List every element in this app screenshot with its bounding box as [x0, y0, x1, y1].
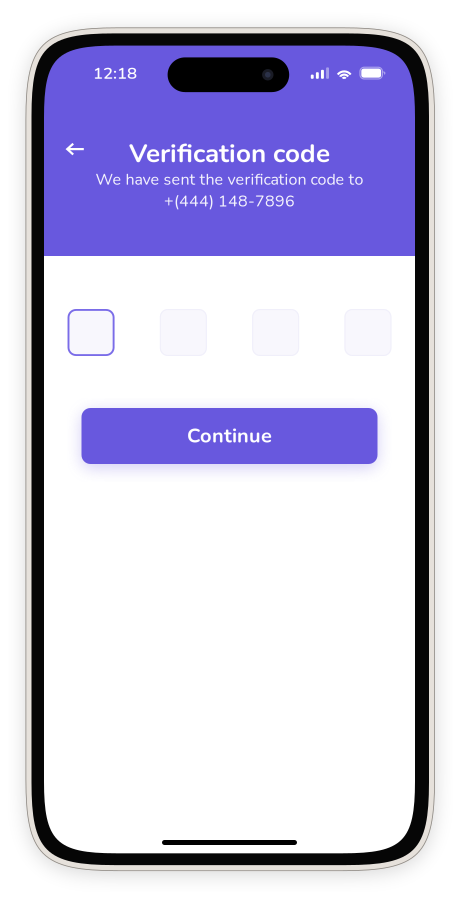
staticText: +(444) 148-7896 [164, 190, 295, 212]
button[interactable]: Continue [81, 408, 377, 464]
staticText: Continue [187, 422, 272, 450]
staticText: We have sent the verification code to [95, 169, 363, 190]
staticText: Verification code [129, 136, 330, 171]
staticText: 12:18 [93, 62, 137, 84]
button[interactable]: Back [44, 139, 110, 169]
